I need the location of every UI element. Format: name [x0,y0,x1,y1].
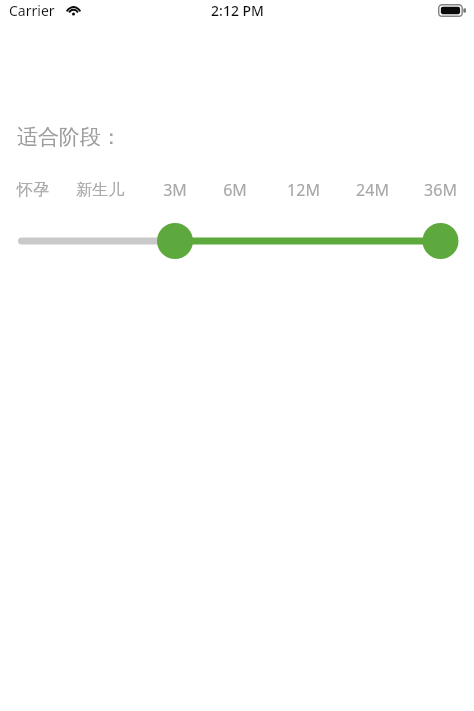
staticText: 新生儿 [76,180,124,200]
button[interactable]: Stage range slider from 3M to 36M [0,217,474,265]
staticText: 6M [223,179,247,201]
other: Battery full [438,4,466,17]
staticText: 12M [287,179,320,201]
button[interactable]: 6M [199,177,271,203]
staticText: 24M [356,179,389,201]
other: Wi-Fi [65,2,82,19]
staticText: 适合阶段： [17,124,122,150]
staticText: 怀孕 [17,180,49,200]
staticText: 2:12 PM [211,1,264,20]
button[interactable]: 24M [336,177,408,203]
button[interactable]: 36M [404,177,474,203]
button[interactable]: 12M [267,177,339,203]
staticText: 3M [163,179,187,201]
button[interactable]: 新生儿 [64,177,136,203]
button[interactable]: 3M [139,177,211,203]
staticText: 36M [424,179,457,201]
staticText: Carrier [9,1,55,20]
button[interactable]: 怀孕 [0,177,69,203]
